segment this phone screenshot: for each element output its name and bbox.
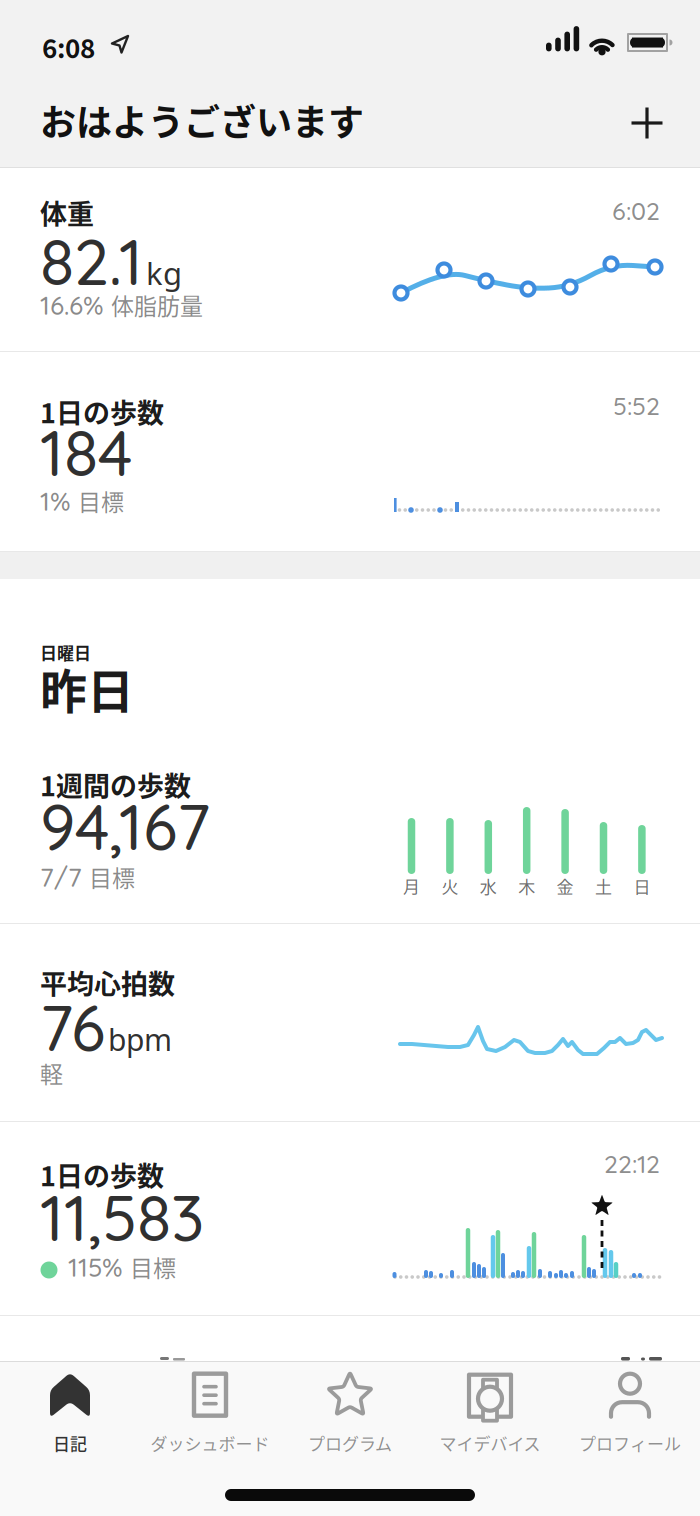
button[interactable]: 22:12 (0, 1122, 700, 1316)
staticText: 目標 (89, 860, 135, 893)
staticText: マイデバイス (439, 1431, 540, 1455)
staticText: 115% (68, 1251, 123, 1283)
staticText: 日 (633, 874, 650, 898)
staticText: 6:08 (42, 28, 95, 66)
staticText: 目標 (78, 484, 124, 517)
button[interactable]: マイデバイス (420, 1366, 560, 1456)
staticText: 7/7 (40, 861, 82, 893)
staticText: プログラム (308, 1431, 392, 1455)
staticText: 22:12 (604, 1148, 660, 1179)
staticText: 水 (480, 874, 497, 898)
staticText: 金 (557, 874, 574, 898)
staticText: 1週間の歩数 (40, 765, 191, 804)
button[interactable]: 平均心拍数 (0, 923, 700, 1122)
button[interactable]: 体重 (0, 168, 700, 352)
staticText: bpm (108, 1019, 172, 1060)
staticText: 1% (40, 485, 71, 517)
staticText: 体脂肪量 (111, 288, 203, 321)
staticText: 5:52 (613, 390, 660, 421)
staticText: 1日の歩数 (40, 392, 164, 431)
button[interactable]: プロフィール (560, 1366, 700, 1456)
staticText: 76 (40, 988, 105, 1067)
staticText: 1日の歩数 (40, 1155, 164, 1194)
staticText: 11,583 (40, 1178, 204, 1257)
button[interactable]: 1週間の歩数 (0, 759, 700, 923)
staticText: kg (146, 252, 182, 294)
staticText: 目標 (130, 1250, 176, 1283)
staticText: 82.1 (40, 222, 143, 301)
staticText: 94,167 (40, 787, 210, 866)
staticText: 体重 (40, 193, 94, 232)
staticText: プロフィール (579, 1431, 681, 1455)
button[interactable]: ダッシュボード (140, 1366, 280, 1456)
staticText: 16.6% (40, 289, 104, 321)
staticText: 昨日 (40, 654, 134, 722)
button[interactable]: 追加 (625, 101, 669, 145)
button[interactable]: 1日の歩数 (0, 352, 700, 552)
staticText: 6:02 (612, 195, 660, 226)
button[interactable]: プログラム (280, 1366, 420, 1456)
staticText: 日曜日 (40, 640, 91, 665)
staticText: 月 (403, 874, 420, 898)
staticText: 184 (40, 413, 132, 492)
staticText: おはようございます (40, 94, 364, 146)
staticText: ダッシュボード (150, 1431, 269, 1455)
staticText: 木 (518, 874, 535, 898)
staticText: 土 (595, 874, 612, 898)
staticText: 平均心拍数 (40, 963, 175, 1002)
staticText: 軽 (40, 1056, 63, 1089)
staticText: 火 (441, 874, 458, 898)
staticText: 日記 (53, 1431, 87, 1455)
button[interactable]: 日記 (0, 1366, 140, 1456)
